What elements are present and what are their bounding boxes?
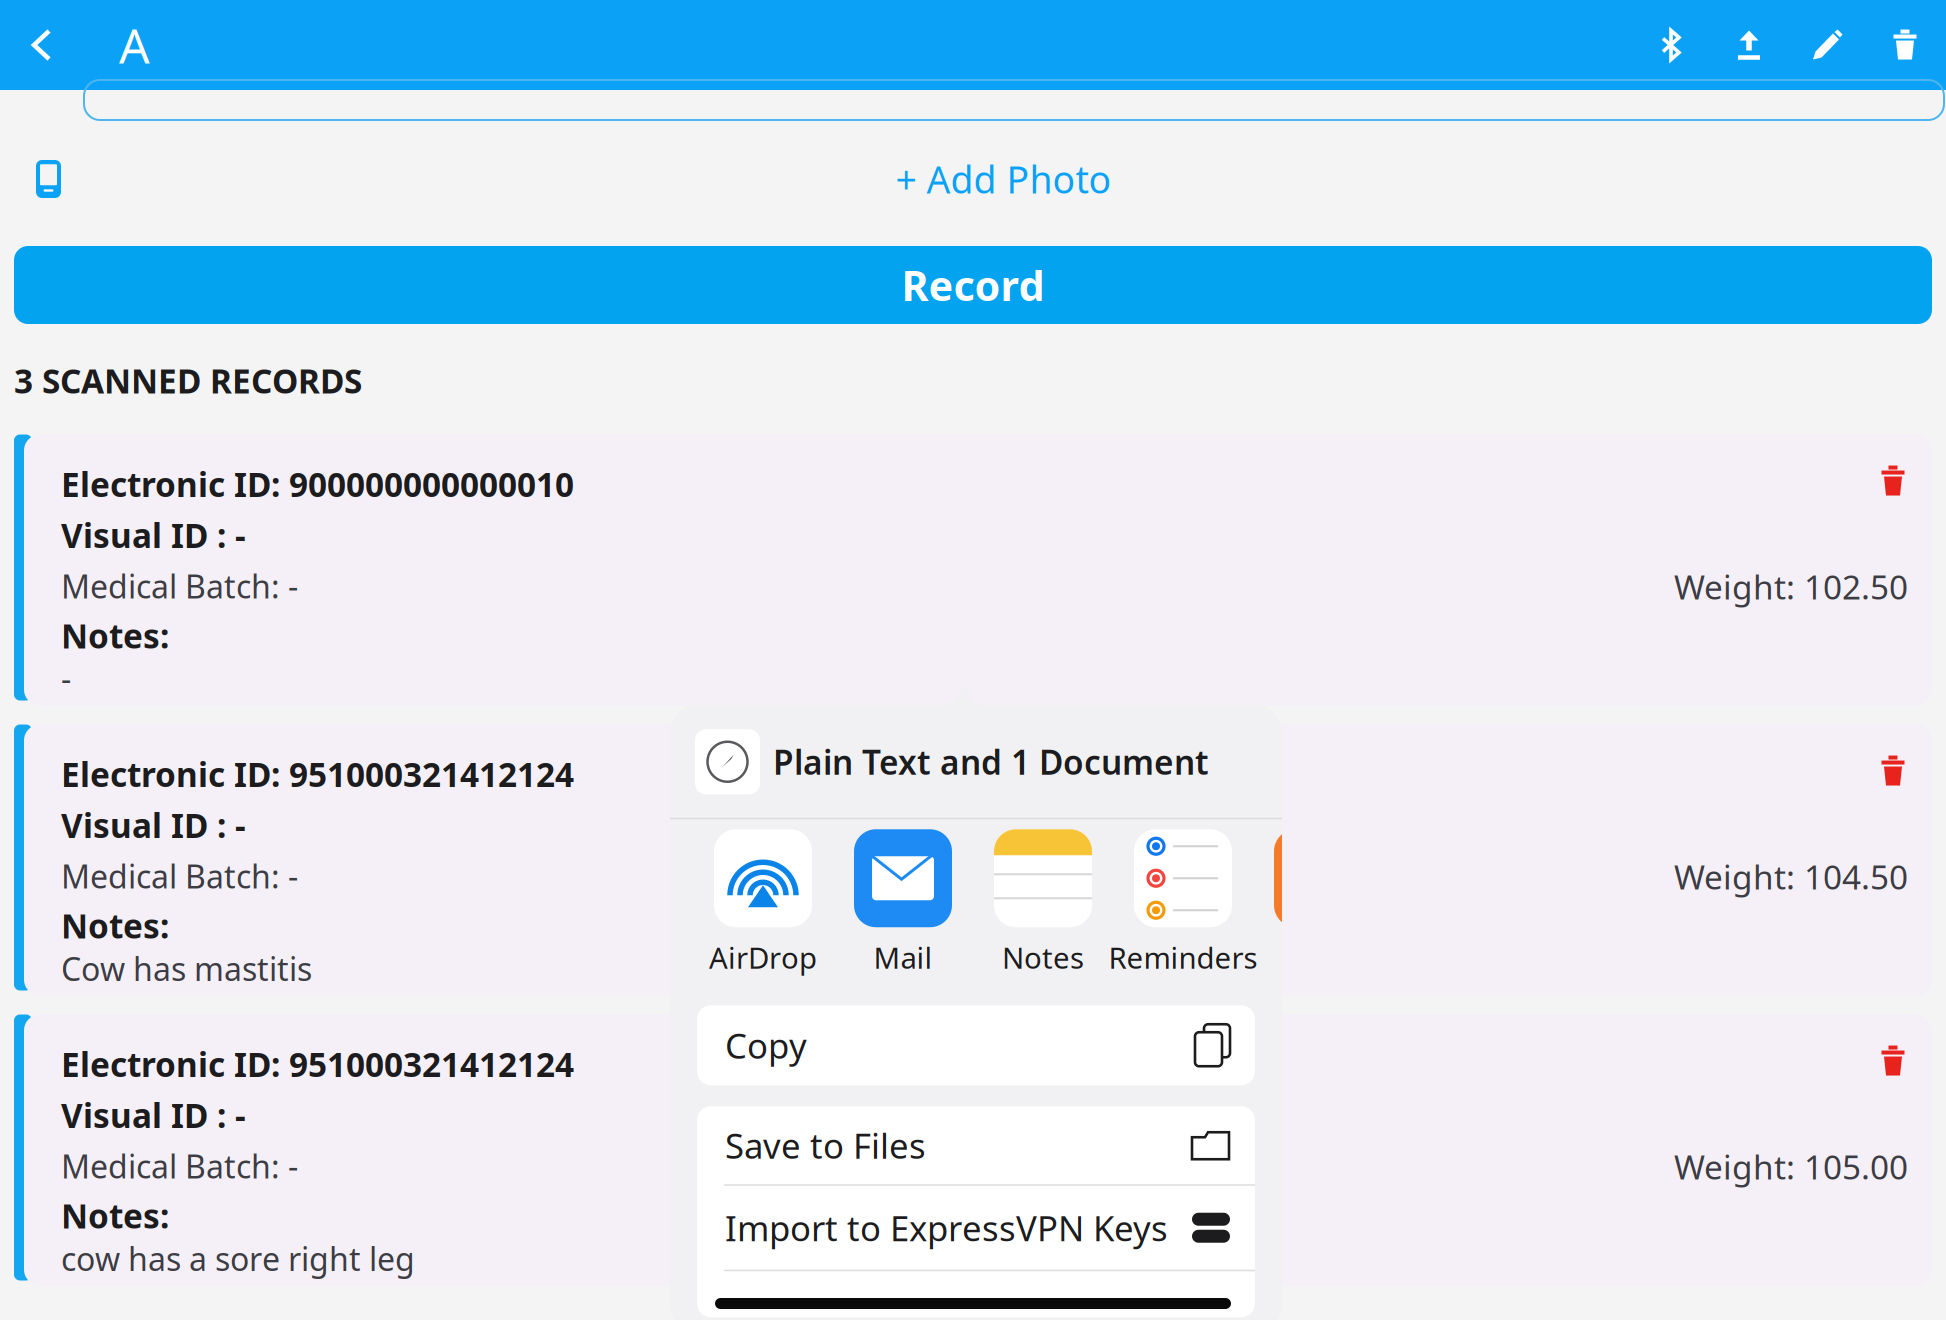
staticText: A [119, 13, 150, 77]
staticText: Weight: 102.50 [1674, 564, 1908, 609]
staticText: Visual ID : - [61, 513, 246, 557]
staticText: Medical Batch: - [61, 1145, 298, 1187]
staticText: Electronic ID: 900000000000010 [61, 462, 574, 506]
staticText: Weight: 104.50 [1674, 854, 1908, 899]
button[interactable]: Bluetooth [1632, 28, 1710, 61]
button[interactable]: AirDrop [693, 819, 833, 1005]
staticText: Reminders [1108, 938, 1257, 977]
staticText: Record [901, 258, 1044, 312]
button[interactable]: Delete record [1880, 464, 1908, 498]
staticText: Save to Files [725, 1122, 926, 1168]
button[interactable]: Record [14, 246, 1932, 324]
staticText: Electronic ID: 951000321412124 [61, 1042, 574, 1086]
staticText: Weight: 105.00 [1674, 1144, 1908, 1189]
button[interactable]: Delete [1866, 28, 1944, 61]
staticText: Plain Text and 1 Document [773, 740, 1209, 784]
staticText: Notes: [61, 903, 169, 948]
button[interactable]: Edit [1788, 28, 1866, 61]
staticText: Notes: [61, 613, 169, 658]
staticText: Copy [725, 1022, 807, 1068]
staticText: 3 SCANNED RECORDS [14, 358, 362, 403]
staticText: Mail [873, 938, 932, 977]
staticText: Import to ExpressVPN Keys [725, 1205, 1168, 1251]
staticText: cow has a sore right leg [61, 1237, 415, 1280]
button[interactable]: Delete record [1880, 1044, 1908, 1078]
staticText: Medical Batch: - [61, 855, 298, 897]
button[interactable]: Share [1710, 28, 1788, 61]
button[interactable]: Save to Files [697, 1106, 1255, 1184]
button[interactable]: Notes [973, 819, 1113, 1005]
staticText: Visual ID : - [61, 803, 246, 847]
button[interactable]: Fr [1253, 819, 1393, 1005]
staticText: - [61, 657, 71, 700]
staticText: Notes: [61, 1193, 169, 1238]
staticText: Medical Batch: - [61, 565, 298, 607]
staticText: Notes [1002, 938, 1084, 977]
button[interactable]: Reminders [1113, 819, 1253, 1005]
button[interactable]: Back [0, 29, 71, 61]
staticText: AirDrop [709, 938, 817, 977]
staticText: Visual ID : - [61, 1093, 246, 1137]
button[interactable]: Mail [833, 819, 973, 1005]
button[interactable]: Delete record [1880, 754, 1908, 788]
button[interactable]: Import to ExpressVPN Keys [697, 1186, 1255, 1270]
staticText: Electronic ID: 951000321412124 [61, 752, 574, 796]
button[interactable]: + Add Photo [895, 154, 1111, 204]
staticText: Cow has mastitis [61, 947, 312, 990]
button[interactable]: Copy [697, 1005, 1255, 1085]
staticText: + Add Photo [895, 154, 1111, 204]
